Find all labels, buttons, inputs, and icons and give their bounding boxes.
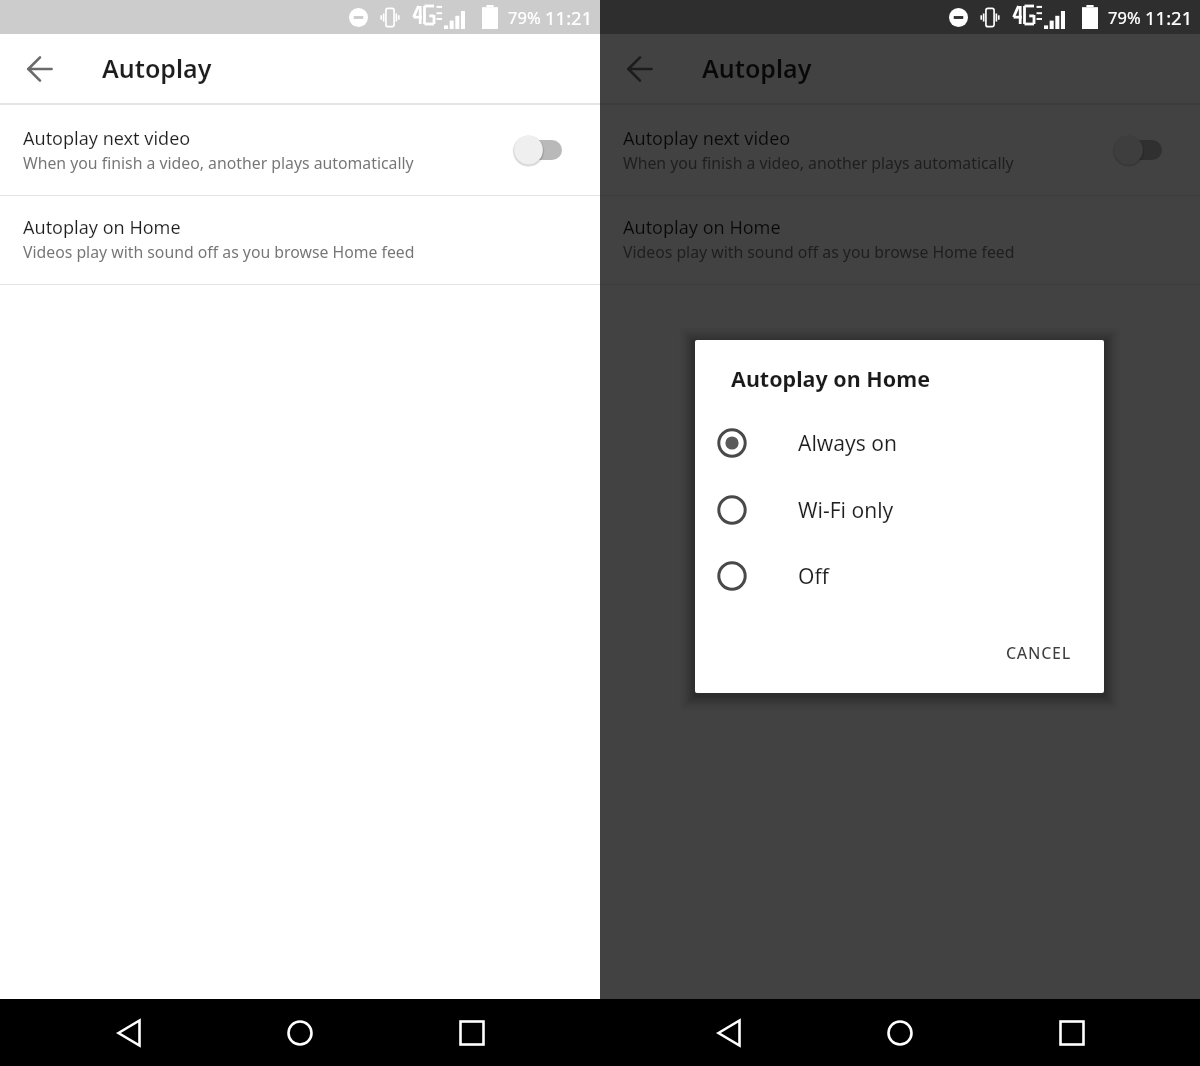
staticText: 11:21 [545, 5, 593, 30]
staticText: When you finish a video, another plays a… [23, 152, 414, 174]
button[interactable]: Home [266, 999, 334, 1066]
button[interactable]: Wi-Fi only [695, 476, 1104, 543]
staticText: Autoplay on Home [623, 215, 781, 240]
staticText: Videos play with sound off as you browse… [23, 241, 415, 263]
staticText: Autoplay on Home [23, 215, 181, 240]
button[interactable]: Recent apps [438, 999, 506, 1066]
button[interactable]: Home [866, 999, 934, 1066]
staticText: Autoplay next video [623, 126, 791, 151]
staticText: Videos play with sound off as you browse… [623, 241, 1015, 263]
button[interactable]: Autoplay next video [0, 105, 600, 195]
staticText: 79% [508, 6, 541, 28]
button[interactable]: Back [12, 41, 68, 97]
staticText: 79% [1108, 6, 1141, 28]
staticText: CANCEL [1006, 642, 1071, 664]
staticText: Off [798, 562, 829, 591]
button[interactable]: Always on [695, 409, 1104, 476]
staticText: Autoplay [102, 51, 212, 85]
staticText: Wi-Fi only [798, 496, 894, 525]
staticText: Autoplay [702, 51, 812, 85]
button[interactable]: CANCEL [987, 630, 1090, 676]
button[interactable]: Off [695, 542, 1104, 609]
staticText: 11:21 [1145, 5, 1193, 30]
button[interactable]: Back [95, 999, 163, 1066]
button[interactable]: Autoplay on Home [0, 196, 600, 284]
staticText: When you finish a video, another plays a… [623, 152, 1014, 174]
staticText: Always on [798, 429, 898, 458]
button[interactable]: Back [695, 999, 763, 1066]
button[interactable]: Recent apps [1038, 999, 1106, 1066]
staticText: Autoplay next video [23, 126, 191, 151]
staticText: Autoplay on Home [731, 364, 931, 393]
